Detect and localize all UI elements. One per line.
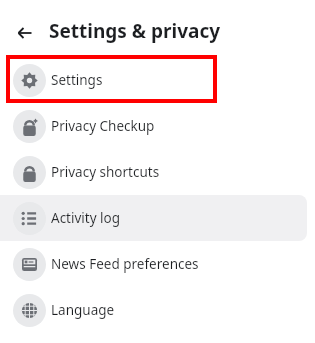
button[interactable]: Language [0,287,307,333]
button[interactable]: Settings [0,57,307,103]
button[interactable]: News Feed preferences [0,241,307,287]
staticText: News Feed preferences [51,255,199,273]
staticText: Language [51,301,115,319]
button[interactable]: Activity log [0,195,307,241]
button[interactable]: Back [11,19,39,47]
staticText: Settings [51,71,103,89]
staticText: Settings & privacy [49,18,221,44]
staticText: Privacy Checkup [51,117,155,135]
button[interactable]: Privacy Checkup [0,103,307,149]
staticText: Activity log [51,209,121,227]
button[interactable]: Privacy shortcuts [0,149,307,195]
staticText: Privacy shortcuts [51,163,160,181]
